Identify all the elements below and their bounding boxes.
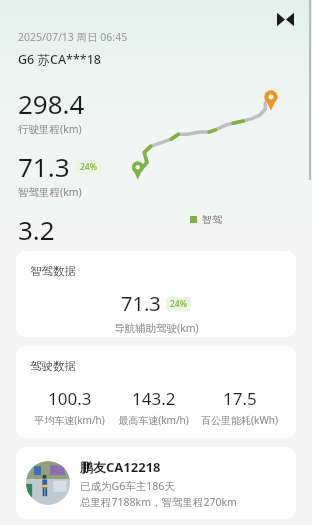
staticText: 鹏友CA12218 [80, 458, 161, 476]
staticText: 71.3 [18, 149, 70, 184]
staticText: 143.2 [132, 387, 176, 410]
staticText: 最高车速(km/h) [118, 413, 189, 427]
staticText: 智驾里程(km) [18, 185, 82, 199]
staticText: 24% [80, 161, 97, 173]
staticText: 行驶里程(km) [18, 122, 82, 136]
staticText: 24% [170, 298, 187, 310]
staticText: 驾驶数据 [30, 359, 76, 373]
staticText: 71.3 [121, 290, 161, 317]
staticText: 总里程7188km，智驾里程270km [80, 495, 237, 509]
staticText: G6 苏CA***18 [18, 51, 101, 68]
staticText: 2025/07/13 周日 06:45 [18, 30, 128, 44]
staticText: 百公里能耗(kWh) [201, 413, 278, 427]
staticText: 100.3 [48, 387, 92, 410]
button[interactable]: 鹏友CA12218 [16, 447, 296, 519]
staticText: 298.4 [18, 86, 85, 121]
button[interactable]: Collapse [268, 2, 302, 36]
staticText: 智驾数据 [30, 264, 76, 278]
button[interactable]: 驾驶数据 [16, 346, 296, 438]
button[interactable]: 智驾数据 [16, 251, 296, 337]
staticText: 3.2 [18, 212, 55, 245]
staticText: 智驾 [202, 213, 222, 226]
staticText: 17.5 [223, 387, 257, 410]
staticText: 导航辅助驾驶(km) [114, 321, 199, 335]
staticText: 已成为G6车主186天 [80, 479, 175, 493]
staticText: 平均车速(km/h) [34, 413, 105, 427]
